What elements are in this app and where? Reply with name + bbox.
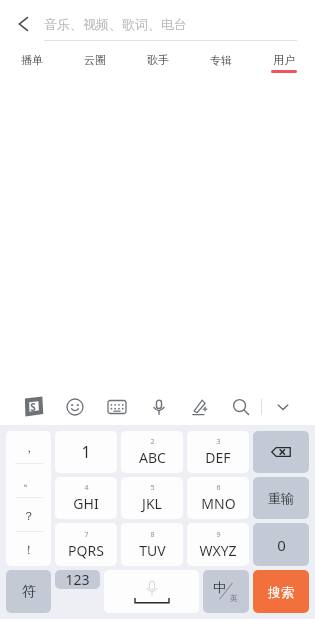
staticText: ！ <box>23 542 35 557</box>
button[interactable]: Emoji <box>54 388 96 425</box>
button[interactable]: 6 <box>187 477 249 519</box>
staticText: 5 <box>150 483 155 493</box>
button[interactable]: Handwriting <box>179 388 220 425</box>
staticText: 7 <box>84 530 89 540</box>
staticText: 8 <box>150 530 155 540</box>
staticText: DEF <box>205 448 231 467</box>
button[interactable]: Sogou input <box>12 388 54 425</box>
staticText: 英 <box>230 593 238 603</box>
staticText: 中 <box>213 579 226 595</box>
staticText: 9 <box>216 530 221 540</box>
button[interactable]: Back <box>8 7 42 41</box>
staticText: 4 <box>84 483 89 493</box>
staticText: ？ <box>23 508 35 523</box>
staticText: MNO <box>201 494 236 513</box>
staticText: 歌手 <box>147 53 169 67</box>
button[interactable]: 专辑 <box>189 48 252 78</box>
staticText: 0 <box>277 535 286 555</box>
button[interactable]: 歌手 <box>126 48 189 78</box>
button[interactable]: 音乐、视频、歌词、电台 <box>44 7 297 41</box>
button[interactable]: Backspace <box>253 431 309 473</box>
button[interactable]: 符 <box>6 570 51 613</box>
staticText: ， <box>23 440 35 455</box>
button[interactable]: 2 <box>121 431 183 473</box>
staticText: PQRS <box>68 541 104 560</box>
button[interactable]: ， <box>6 431 51 566</box>
staticText: 专辑 <box>210 53 232 67</box>
button[interactable]: 用户 <box>252 48 315 78</box>
staticText: 。 <box>23 474 35 489</box>
button[interactable]: 3 <box>187 431 249 473</box>
button[interactable]: 搜索 <box>253 570 309 613</box>
staticText: GHI <box>73 494 99 513</box>
button[interactable]: 重输 <box>253 477 309 519</box>
staticText: JKL <box>142 494 162 513</box>
button[interactable]: 123 <box>55 570 100 589</box>
staticText: S <box>30 400 36 414</box>
staticText: 2 <box>150 437 155 447</box>
button[interactable]: 0 <box>253 523 309 566</box>
button[interactable]: 8 <box>121 523 183 566</box>
staticText: ABC <box>139 448 166 467</box>
staticText: 6 <box>216 483 221 493</box>
button[interactable]: 7 <box>55 523 117 566</box>
button[interactable]: 云圈 <box>63 48 126 78</box>
staticText: 符 <box>22 583 36 601</box>
staticText: 3 <box>216 437 221 447</box>
staticText: 用户 <box>273 53 295 67</box>
button[interactable]: 1 <box>55 431 117 473</box>
staticText: 搜索 <box>268 584 294 600</box>
button[interactable]: Space <box>104 570 199 613</box>
staticText: 播单 <box>21 53 43 67</box>
staticText: 1 <box>81 441 91 463</box>
button[interactable]: 9 <box>187 523 249 566</box>
staticText: 重输 <box>268 490 294 506</box>
staticText: 123 <box>65 570 90 589</box>
staticText: WXYZ <box>199 541 237 560</box>
button[interactable]: Voice input <box>138 388 179 425</box>
staticText: 云圈 <box>84 53 106 67</box>
button[interactable]: Chinese English toggle <box>203 570 249 613</box>
staticText: 音乐、视频、歌词、电台 <box>44 16 187 32</box>
button[interactable]: 5 <box>121 477 183 519</box>
button[interactable]: Hide keyboard <box>262 388 303 425</box>
button[interactable]: Search <box>220 388 261 425</box>
staticText: TUV <box>139 541 166 560</box>
button[interactable]: 4 <box>55 477 117 519</box>
button[interactable]: Keyboard layout <box>96 388 138 425</box>
button[interactable]: 播单 <box>0 48 63 78</box>
